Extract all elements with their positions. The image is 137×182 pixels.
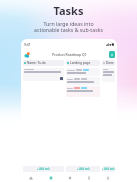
button[interactable]: Profile: [98, 174, 117, 182]
button[interactable]: Inbox: [60, 174, 79, 182]
staticText: Landing page: [70, 61, 91, 65]
button[interactable]: Name: To-do: [23, 60, 64, 66]
staticText: + Add task: [77, 167, 90, 171]
button[interactable]: + Add task: [23, 166, 64, 172]
button[interactable]: Tasks: [41, 174, 60, 182]
staticText: + Add task: [37, 167, 50, 171]
button[interactable]: [66, 86, 100, 97]
staticText: Name: To-do: [27, 61, 46, 65]
button[interactable]: [66, 68, 100, 76]
staticText: Product Roadmap Q1: [52, 52, 87, 57]
staticText: Done: [106, 61, 114, 65]
button[interactable]: [66, 77, 100, 85]
staticText: + Add task: [102, 167, 115, 171]
button[interactable]: Share: [109, 51, 115, 58]
button[interactable]: [102, 68, 115, 82]
button[interactable]: [23, 68, 64, 81]
button[interactable]: Done: [102, 60, 115, 66]
button[interactable]: Landing page: [66, 60, 100, 66]
button[interactable]: + Add task: [66, 166, 100, 172]
button[interactable]: + Add task: [102, 166, 115, 172]
staticText: 9:41: [24, 42, 31, 47]
staticText: Tasks: [0, 3, 137, 18]
button[interactable]: Team: [79, 174, 98, 182]
staticText: Turn large ideas into actionable tasks &…: [0, 20, 137, 34]
button[interactable]: Home: [21, 174, 41, 182]
